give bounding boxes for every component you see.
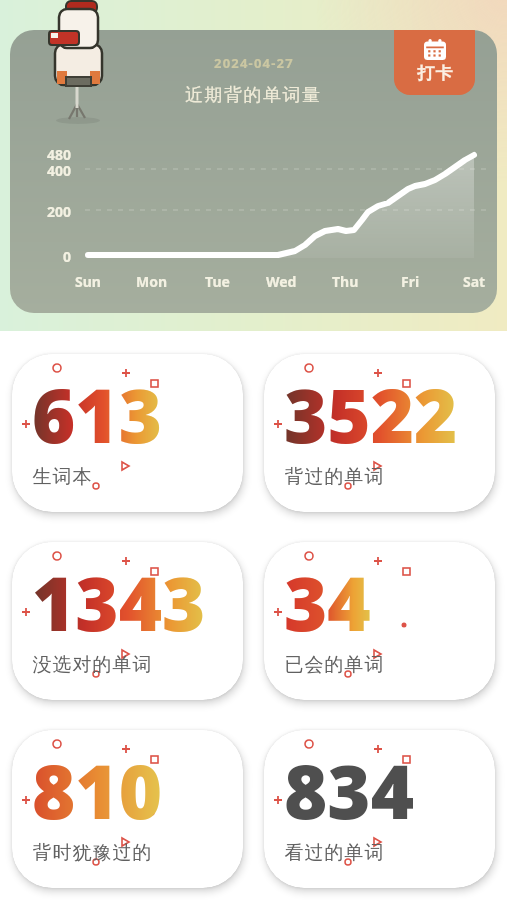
staticText: 1343 xyxy=(32,552,206,653)
button[interactable]: 3522 xyxy=(264,354,495,512)
staticText: Wed xyxy=(266,272,297,291)
staticText: 34 xyxy=(284,552,371,653)
button[interactable]: 1343 xyxy=(12,542,243,700)
staticText: 810 xyxy=(32,740,163,841)
staticText: 3522 xyxy=(284,364,458,465)
staticText: 480 xyxy=(47,145,72,164)
staticText: Fri xyxy=(401,272,420,291)
button[interactable]: 834 xyxy=(264,730,495,888)
staticText: Sun xyxy=(75,272,101,291)
staticText: 400 xyxy=(47,161,72,180)
staticText: Thu xyxy=(332,272,359,291)
button[interactable]: 810 xyxy=(12,730,243,888)
staticText: 背过的单词 xyxy=(284,465,384,489)
staticText: 没选对的单词 xyxy=(32,653,152,677)
staticText: Sat xyxy=(463,272,486,291)
staticText: 已会的单词 xyxy=(284,653,384,677)
staticText: 0 xyxy=(63,247,72,266)
staticText: 看过的单词 xyxy=(284,841,384,865)
staticText: 背时犹豫过的 xyxy=(32,841,152,865)
staticText: 近期背的单词量 xyxy=(185,84,322,107)
staticText: 2024-04-27 xyxy=(214,54,294,72)
button[interactable]: 打卡 xyxy=(394,30,475,95)
button[interactable]: 34 xyxy=(264,542,495,700)
staticText: 613 xyxy=(32,364,163,465)
button[interactable]: 613 xyxy=(12,354,243,512)
staticText: 生词本 xyxy=(32,465,92,489)
staticText: Mon xyxy=(136,272,168,291)
staticText: 打卡 xyxy=(417,63,453,84)
staticText: Tue xyxy=(205,272,230,291)
staticText: 200 xyxy=(47,202,72,221)
staticText: 834 xyxy=(284,740,415,841)
